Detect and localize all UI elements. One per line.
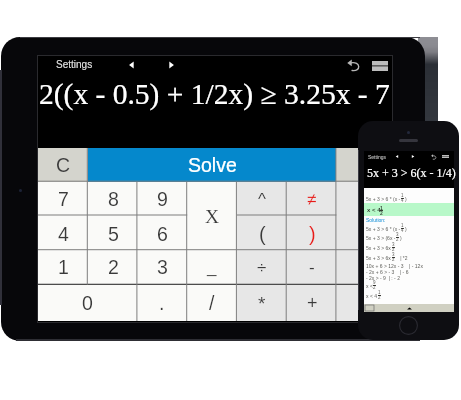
staticText: 1 [401, 193, 404, 198]
staticText: 2 [392, 247, 395, 252]
button[interactable]: 4 [38, 216, 88, 251]
staticText: 5x + 3 > 6x - [366, 255, 394, 261]
button[interactable]: ( [237, 216, 287, 251]
button[interactable]: Previous [126, 59, 137, 71]
staticText: _ [207, 258, 217, 277]
button[interactable]: 2 [88, 250, 138, 284]
staticText: / [209, 292, 215, 314]
staticText: x < [366, 283, 373, 289]
staticText: - [309, 258, 315, 277]
button[interactable]: C [38, 148, 88, 182]
button[interactable] [336, 182, 392, 251]
staticText: . [159, 292, 165, 314]
staticText: - 2x > - 9 | : - 2 [366, 275, 400, 281]
button[interactable]: 5x + 3 > 6 * (x - [366, 223, 456, 233]
staticText: Settings [368, 154, 387, 160]
staticText: - 2x + 6 > - 3 | - 6 [366, 269, 409, 275]
staticText: ) [400, 235, 402, 241]
button[interactable]: / [187, 285, 237, 321]
staticText: ( [259, 223, 266, 245]
button[interactable]: 1 [38, 250, 88, 284]
button[interactable]: 8 [88, 182, 138, 216]
button[interactable]: . [137, 285, 187, 321]
staticText: 2 [396, 237, 399, 242]
staticText: 0 [82, 292, 93, 314]
button[interactable]: - [287, 250, 337, 284]
button[interactable]: 9 [137, 182, 187, 216]
staticText: Solve [188, 154, 237, 176]
staticText: 3 [157, 256, 168, 278]
button[interactable]: X [187, 182, 237, 251]
staticText: 5x + 3 > 6(x - 1/4) [367, 166, 456, 179]
button[interactable]: Undo [347, 59, 361, 72]
staticText: 2 [380, 210, 383, 216]
staticText: 9 [373, 280, 376, 285]
staticText: 8 [108, 188, 119, 210]
button[interactable]: Previous [394, 154, 400, 159]
staticText: 2((x - 0.5) + 1/2x) ≥ 3.25x - 7 [39, 78, 390, 111]
button[interactable] [336, 250, 392, 284]
staticText: 5x + 3 > 6 * (x - [366, 196, 401, 202]
button[interactable]: 6 [137, 216, 187, 251]
button[interactable]: 0 [38, 285, 137, 321]
button[interactable]: Keyboard [365, 305, 374, 311]
staticText: ) [309, 223, 316, 245]
button[interactable]: ÷ [237, 250, 287, 284]
staticText: 1 [378, 290, 381, 295]
button[interactable]: x < 4 [366, 204, 456, 216]
button[interactable]: 3 [137, 250, 187, 284]
staticText: 3 [392, 242, 395, 247]
staticText: Settings [56, 59, 93, 70]
staticText: ) [405, 226, 407, 232]
button[interactable]: Solve [88, 148, 337, 182]
staticText: 5x + 3 > 6 * (x - [366, 226, 401, 232]
staticText: 10x + 6 > 12x - 3 | - 12x [366, 263, 423, 269]
button[interactable]: Menu [442, 155, 449, 158]
staticText: 9 [157, 188, 168, 210]
button[interactable] [336, 285, 392, 321]
staticText: ) [405, 196, 407, 202]
staticText: * [258, 293, 266, 314]
button[interactable]: Next [410, 154, 416, 159]
staticText: x < 4 [366, 293, 377, 299]
staticText: ÷ [257, 258, 267, 277]
staticText: x < 4 [367, 207, 381, 214]
button[interactable]: ≠ [287, 182, 337, 216]
staticText: 5 [108, 223, 119, 245]
button[interactable]: x < [366, 280, 456, 290]
staticText: 1 [401, 223, 404, 228]
button[interactable]: Undo [431, 154, 437, 160]
staticText: C [56, 154, 71, 176]
button[interactable]: 5x + 3 > 6 * (x - [366, 193, 456, 203]
button[interactable]: ^ [237, 182, 287, 216]
staticText: 3 [396, 232, 399, 237]
staticText: 4 [401, 228, 404, 233]
staticText: 4 [401, 198, 404, 203]
button[interactable]: * [237, 285, 287, 321]
staticText: 5x + 3 > (6x - [366, 235, 396, 241]
staticText: | *2 [396, 255, 408, 261]
staticText: ^ [258, 190, 266, 209]
button[interactable]: Next [166, 59, 177, 71]
staticText: 5x + 3 > 6x - [366, 245, 394, 251]
button[interactable]: 5x + 3 > 6x - [366, 252, 456, 262]
staticText: 1 [380, 205, 383, 211]
staticText: 4 [58, 223, 69, 245]
staticText: 2 [378, 295, 381, 300]
staticText: 3 [392, 252, 395, 257]
staticText: X [205, 206, 220, 228]
button[interactable]: 5 [88, 216, 138, 251]
button[interactable]: _ [187, 250, 237, 284]
button[interactable] [336, 148, 392, 182]
staticText: Solution: [366, 217, 386, 223]
staticText: 2 [108, 256, 119, 278]
button[interactable]: x < 4 [366, 290, 456, 300]
staticText: + [307, 293, 318, 313]
button[interactable]: ) [287, 216, 337, 251]
button[interactable]: + [287, 285, 337, 321]
staticText: 2 [392, 257, 395, 262]
button[interactable]: 7 [38, 182, 88, 216]
button[interactable]: 5x + 3 > (6x - [366, 232, 456, 242]
button[interactable]: 5x + 3 > 6x - [366, 242, 456, 252]
button[interactable]: Menu [372, 61, 388, 71]
